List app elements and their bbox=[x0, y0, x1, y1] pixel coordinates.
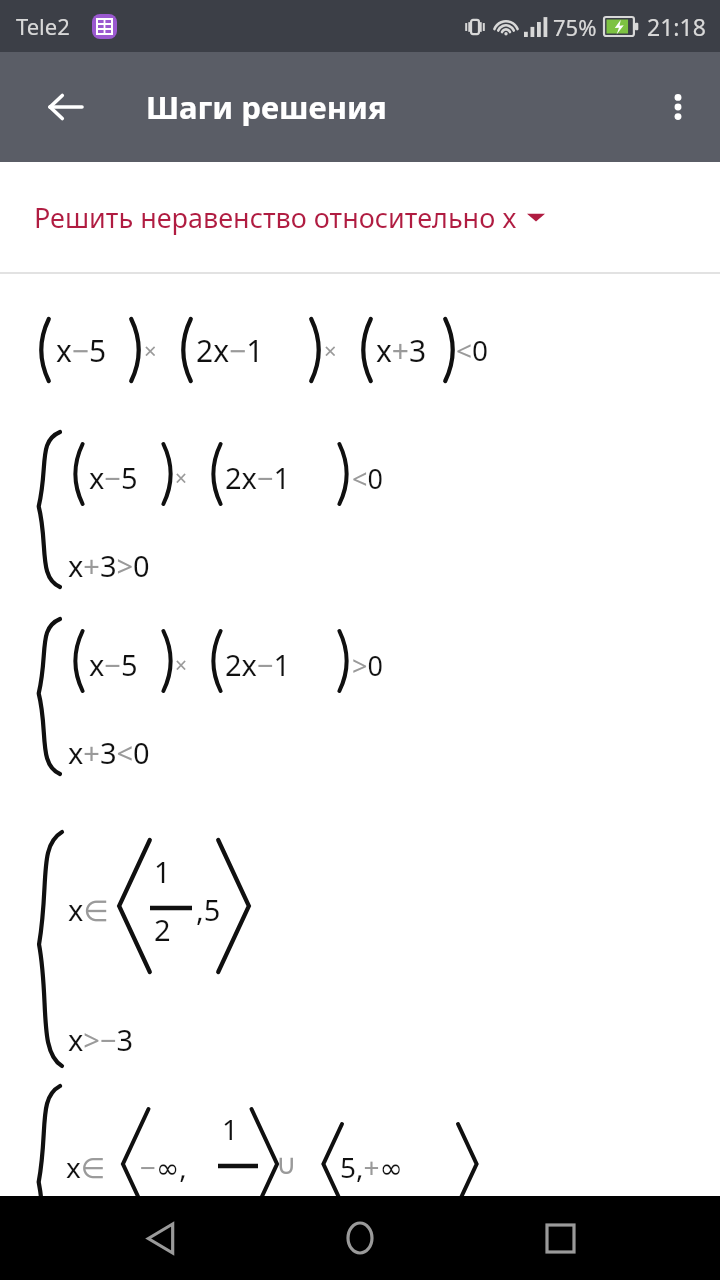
staticText: x∈ bbox=[66, 1148, 106, 1186]
staticText: Шаги решения bbox=[146, 86, 387, 128]
staticText: x−5 bbox=[89, 645, 138, 684]
button[interactable]: Back bbox=[120, 1198, 200, 1278]
staticText: × bbox=[144, 335, 157, 365]
staticText: x∈ bbox=[68, 890, 109, 929]
staticText: −∞, bbox=[140, 1148, 187, 1186]
staticText: 75% bbox=[553, 12, 597, 42]
staticText: ,5 bbox=[196, 890, 221, 929]
button[interactable]: Home bbox=[320, 1198, 400, 1278]
staticText: x+3 bbox=[376, 330, 427, 371]
staticText: x+3>0 bbox=[68, 546, 150, 585]
button[interactable]: Решить неравенство относительно x bbox=[0, 162, 720, 272]
staticText: <0 bbox=[352, 460, 383, 497]
staticText: 1 bbox=[154, 852, 171, 891]
button[interactable]: More options bbox=[646, 75, 710, 139]
staticText: Решить неравенство относительно x bbox=[34, 199, 517, 236]
staticText: 2x−1 bbox=[225, 458, 291, 497]
staticText: x−5 bbox=[56, 330, 107, 371]
staticText: 2x−1 bbox=[196, 330, 264, 371]
button[interactable]: Back bbox=[30, 72, 100, 142]
staticText: × bbox=[175, 651, 188, 680]
staticText: 5,+∞ bbox=[340, 1148, 403, 1186]
staticText: ∪ bbox=[276, 1148, 297, 1181]
staticText: 2 bbox=[154, 910, 171, 949]
staticText: 1 bbox=[222, 1110, 239, 1148]
staticText: <0 bbox=[456, 331, 489, 369]
staticText: 21:18 bbox=[647, 11, 706, 42]
staticText: >0 bbox=[352, 647, 383, 684]
staticText: x>−3 bbox=[68, 1020, 134, 1059]
staticText: Tele2 bbox=[16, 11, 70, 41]
staticText: 2x−1 bbox=[225, 645, 291, 684]
button[interactable]: Recents bbox=[520, 1198, 600, 1278]
staticText: × bbox=[175, 464, 188, 493]
staticText: x+3<0 bbox=[68, 733, 150, 772]
staticText: × bbox=[324, 335, 337, 365]
staticText: x−5 bbox=[89, 458, 138, 497]
